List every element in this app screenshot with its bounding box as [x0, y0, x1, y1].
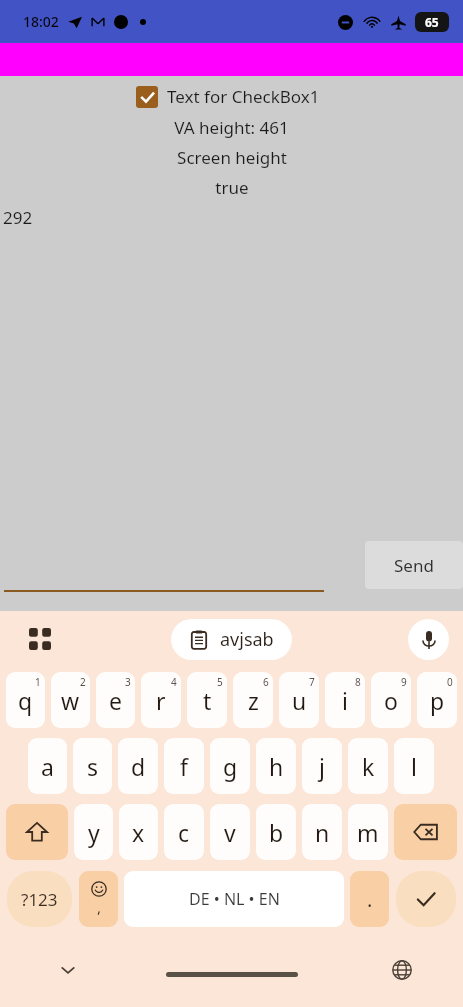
button[interactable]: Apps [22, 621, 58, 657]
button[interactable]: Text for CheckBox1 [136, 85, 463, 108]
button[interactable]: h [256, 738, 296, 794]
button[interactable]: m [348, 804, 388, 860]
button[interactable]: Send [365, 541, 463, 589]
staticText: 6 [263, 675, 269, 689]
staticText: g [223, 751, 238, 782]
button[interactable]: avjsab [171, 619, 292, 660]
button[interactable]: e [96, 672, 135, 728]
staticText: avjsab [220, 627, 274, 652]
button[interactable]: n [302, 804, 342, 860]
staticText: o [384, 685, 398, 716]
button[interactable]: c [164, 804, 204, 860]
staticText: 9 [401, 675, 407, 689]
button[interactable]: a [28, 738, 67, 794]
staticText: Screen height [177, 146, 287, 169]
button[interactable]: u [279, 672, 319, 728]
staticText: , [97, 897, 102, 917]
button[interactable]: z [233, 672, 273, 728]
staticText: 1 [35, 675, 41, 689]
button[interactable]: Hide keyboard [50, 952, 86, 988]
button[interactable]: t [187, 672, 227, 728]
staticText: 4 [171, 675, 177, 689]
staticText: d [131, 751, 146, 782]
staticText: a [41, 751, 54, 782]
staticText: h [269, 751, 284, 782]
button[interactable]: Backspace [394, 804, 457, 860]
staticText: q [18, 685, 33, 716]
staticText: ?123 [21, 888, 58, 911]
staticText: j [319, 751, 325, 782]
staticText: Send [394, 554, 434, 577]
button[interactable]: w [51, 672, 90, 728]
staticText: Text for CheckBox1 [167, 85, 320, 108]
button[interactable]: j [302, 738, 342, 794]
staticText: z [248, 685, 259, 716]
staticText: e [109, 685, 122, 716]
staticText: i [342, 685, 348, 716]
staticText: r [156, 685, 166, 716]
staticText: u [292, 685, 307, 716]
staticText: 0 [447, 675, 453, 689]
button[interactable]: x [119, 804, 158, 860]
staticText: 292 [3, 206, 33, 229]
staticText: 2 [80, 675, 86, 689]
staticText: t [203, 685, 212, 716]
button[interactable]: o [371, 672, 411, 728]
button[interactable]: q [6, 672, 45, 728]
staticText: c [178, 817, 190, 848]
button[interactable]: ?123 [7, 871, 72, 927]
staticText: k [362, 751, 375, 782]
staticText: 3 [125, 675, 131, 689]
button[interactable]: DE • NL • EN [124, 871, 344, 927]
staticText: b [269, 817, 284, 848]
staticText: v [224, 817, 236, 848]
staticText: p [430, 685, 445, 716]
staticText: 8 [355, 675, 361, 689]
staticText: 18:02 [23, 12, 59, 31]
button[interactable]: v [210, 804, 250, 860]
button[interactable]: Emoji [79, 871, 118, 927]
staticText: DE • NL • EN [189, 888, 280, 910]
staticText: s [87, 751, 99, 782]
button[interactable]: p [417, 672, 457, 728]
button[interactable]: s [73, 738, 112, 794]
staticText: m [357, 817, 379, 848]
staticText: VA height: 461 [174, 116, 289, 139]
button[interactable]: i [325, 672, 365, 728]
staticText: true [215, 176, 249, 199]
button[interactable]: Shift [6, 804, 68, 860]
button[interactable]: r [141, 672, 181, 728]
button[interactable]: Voice input [408, 619, 449, 660]
staticText: w [61, 685, 80, 716]
staticText: 5 [217, 675, 223, 689]
button[interactable]: k [348, 738, 388, 794]
staticText: 7 [309, 675, 315, 689]
staticText: n [315, 817, 330, 848]
staticText: 65 [425, 14, 439, 30]
staticText: l [411, 751, 417, 782]
staticText: x [132, 817, 145, 848]
staticText: y [88, 817, 100, 848]
button[interactable]: . [350, 871, 389, 927]
button[interactable]: Enter [396, 871, 456, 927]
staticText: f [180, 751, 188, 782]
button[interactable]: b [256, 804, 296, 860]
button[interactable]: d [118, 738, 158, 794]
button[interactable]: f [164, 738, 204, 794]
staticText: . [367, 886, 373, 913]
button[interactable]: y [74, 804, 113, 860]
button[interactable]: Change language [384, 952, 420, 988]
button[interactable]: l [394, 738, 434, 794]
button[interactable]: g [210, 738, 250, 794]
